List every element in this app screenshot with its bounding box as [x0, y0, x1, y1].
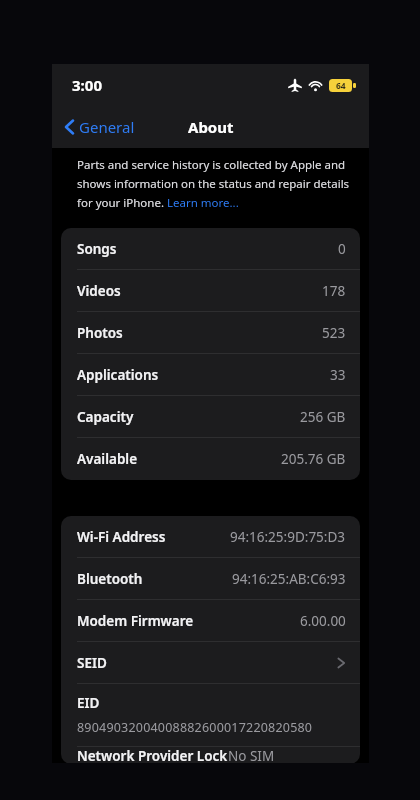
button[interactable]: Applications [61, 354, 360, 396]
staticText: Videos [77, 282, 121, 300]
staticText: for your iPhone. [77, 195, 167, 211]
staticText: 64 [336, 80, 346, 92]
button[interactable]: Network Provider Lock [61, 747, 360, 764]
button[interactable]: Songs [61, 228, 360, 270]
staticText: 94:16:25:9D:75:D3 [230, 528, 346, 546]
staticText: Songs [77, 240, 117, 258]
staticText: Available [77, 450, 138, 468]
staticText: Applications [77, 366, 159, 384]
button[interactable]: EID [61, 684, 360, 747]
button[interactable]: Photos [61, 312, 360, 354]
staticText: Wi-Fi Address [77, 528, 166, 546]
staticText: About [188, 117, 234, 137]
staticText: 256 GB [300, 408, 346, 426]
staticText: 178 [322, 282, 346, 300]
staticText: Network Provider Lock [77, 747, 228, 764]
staticText: 33 [330, 366, 346, 384]
staticText: 205.76 GB [281, 450, 346, 468]
staticText: Learn more... [167, 195, 239, 211]
staticText: 6.00.00 [300, 612, 346, 630]
button[interactable]: Bluetooth [61, 558, 360, 600]
staticText: Bluetooth [77, 570, 143, 588]
button[interactable]: Available [61, 438, 360, 480]
staticText: 0 [338, 240, 346, 258]
button[interactable]: General [60, 113, 139, 141]
button[interactable]: SEID [61, 642, 360, 684]
staticText: Capacity [77, 408, 134, 426]
staticText: Parts and service history is collected b… [77, 157, 346, 173]
staticText: 89049032004008882600017220820580 [77, 719, 313, 736]
button[interactable]: Wi-Fi Address [61, 516, 360, 558]
staticText: SEID [77, 654, 107, 672]
staticText: EID [77, 694, 100, 712]
staticText: 94:16:25:AB:C6:93 [232, 570, 346, 588]
staticText: 3:00 [72, 75, 102, 95]
staticText: shows information on the status and repa… [77, 176, 350, 192]
staticText: Photos [77, 324, 123, 342]
staticText: Modem Firmware [77, 612, 194, 630]
staticText: General [79, 117, 135, 137]
button[interactable]: Learn more... [167, 195, 239, 211]
button[interactable]: Modem Firmware [61, 600, 360, 642]
staticText: 523 [322, 324, 346, 342]
button[interactable]: Videos [61, 270, 360, 312]
button[interactable]: Capacity [61, 396, 360, 438]
staticText: No SIM restrictions [228, 747, 346, 764]
other: SEID details [61, 642, 360, 684]
